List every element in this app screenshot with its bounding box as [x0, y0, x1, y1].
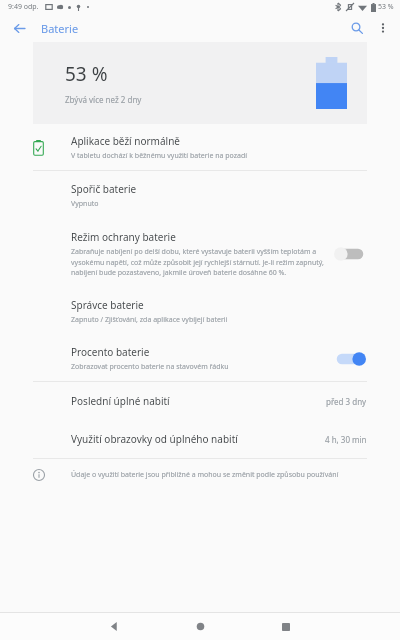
button[interactable]: Toggle off — [333, 244, 367, 264]
staticText: Zbývá více než 2 dny — [65, 94, 142, 105]
button[interactable]: Back — [100, 613, 128, 640]
button[interactable]: Aplikace běží normálně — [0, 125, 400, 170]
button[interactable]: Poslední úplné nabití — [0, 382, 400, 420]
staticText: Zabraňuje nabíjení po delší dobu, které … — [71, 247, 327, 277]
staticText: Režim ochrany baterie — [71, 230, 176, 244]
staticText: Správce baterie — [71, 298, 144, 312]
button[interactable]: Back — [6, 15, 32, 41]
button[interactable]: Toggle on — [333, 349, 367, 369]
staticText: Údaje o využití baterie jsou přibližné a… — [71, 470, 339, 480]
button[interactable]: More options — [370, 15, 396, 41]
staticText: Aplikace běží normálně — [71, 134, 180, 148]
staticText: 4 h, 30 min — [325, 434, 367, 445]
staticText: Vypnuto — [71, 199, 99, 209]
staticText: Spořič baterie — [71, 182, 137, 196]
staticText: 53 % — [378, 2, 394, 12]
button[interactable]: Správce baterie — [0, 287, 400, 336]
button[interactable]: Spořič baterie — [0, 171, 400, 220]
staticText: Poslední úplné nabití — [71, 394, 170, 408]
button[interactable]: Home — [186, 613, 214, 640]
button[interactable]: Search — [344, 15, 370, 41]
staticText: Využití obrazovky od úplného nabití — [71, 432, 238, 446]
staticText: Baterie — [41, 21, 79, 36]
button[interactable]: Využití obrazovky od úplného nabití — [0, 420, 400, 458]
staticText: Zapnuto / Zjišťování, zda aplikace vybíj… — [71, 315, 228, 325]
staticText: V tabletu dochází k běžnému využití bate… — [71, 151, 248, 161]
staticText: 53 % — [65, 61, 108, 87]
staticText: Zobrazovat procento baterie na stavovém … — [71, 362, 229, 372]
button[interactable]: Procento baterie — [0, 336, 400, 381]
staticText: před 3 dny — [326, 396, 367, 407]
staticText: Procento baterie — [71, 345, 150, 359]
staticText: 9:49 odp. — [8, 2, 39, 12]
button[interactable]: Režim ochrany baterie — [0, 220, 400, 287]
button[interactable]: Recent apps — [272, 613, 300, 640]
